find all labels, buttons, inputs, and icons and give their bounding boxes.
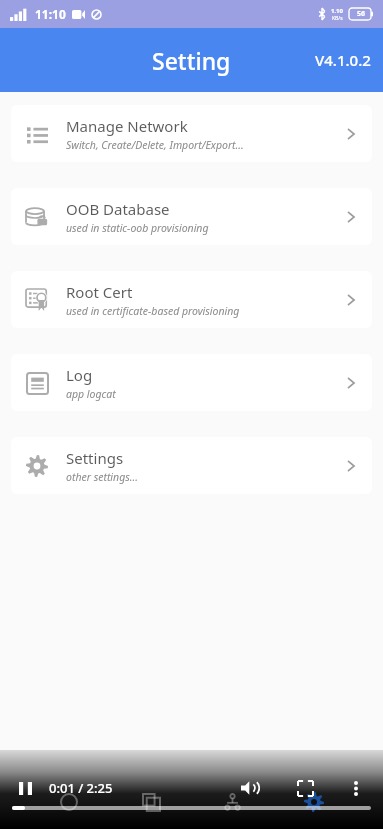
- button[interactable]: Home: [56, 789, 82, 815]
- staticText: Settings: [66, 448, 124, 468]
- staticText: 0:01 / 2:25: [49, 779, 113, 797]
- button[interactable]: Setting: [301, 789, 327, 815]
- staticText: other settings...: [66, 470, 138, 484]
- button[interactable]: Log: [11, 354, 372, 411]
- staticText: used in static-oob provisioning: [66, 221, 209, 235]
- staticText: OOB Database: [66, 199, 170, 219]
- button[interactable]: Pause: [14, 777, 36, 799]
- button[interactable]: Settings: [11, 437, 372, 494]
- button[interactable]: Network: [219, 789, 245, 815]
- button[interactable]: Volume: [237, 776, 261, 800]
- button[interactable]: Manage Network: [11, 105, 372, 162]
- button[interactable]: Recents: [138, 789, 164, 815]
- staticText: V4.1.0.2: [315, 50, 371, 70]
- button[interactable]: Fullscreen: [293, 776, 317, 800]
- staticText: KB/s: [332, 15, 343, 22]
- staticText: Switch, Create/Delete, Import/Export...: [66, 138, 244, 152]
- staticText: Root Cert: [66, 282, 133, 302]
- staticText: app logcat: [66, 387, 116, 401]
- staticText: 11:10: [35, 6, 66, 22]
- staticText: 1.10: [331, 7, 343, 15]
- staticText: Manage Network: [66, 116, 188, 136]
- button[interactable]: OOB Database: [11, 188, 372, 245]
- button[interactable]: Root Cert: [11, 271, 372, 328]
- staticText: Setting: [152, 45, 231, 76]
- button[interactable]: More options: [345, 777, 367, 799]
- staticText: used in certificate-based provisioning: [66, 304, 240, 318]
- staticText: Log: [66, 365, 93, 385]
- staticText: 56: [357, 9, 366, 19]
